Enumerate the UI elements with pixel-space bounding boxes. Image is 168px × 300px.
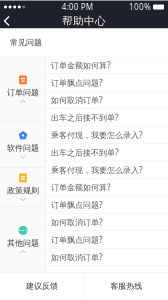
staticText: 订单飘点问题?: [51, 234, 102, 245]
staticText: 常见问题: [10, 38, 42, 47]
staticText: 订单金额如何算?: [51, 182, 110, 193]
button[interactable]: 如何取消订单?: [46, 248, 168, 266]
button[interactable]: 订单飘点问题?: [46, 196, 168, 213]
staticText: 乘客付现，我要怎么录入?: [51, 130, 142, 140]
button[interactable]: 乘客付现，我要怎么录入?: [46, 126, 168, 144]
staticText: 建议反馈: [26, 281, 58, 291]
staticText: 订单飘点问题?: [51, 77, 102, 88]
staticText: 政策规则: [7, 186, 39, 195]
staticText: 软件问题: [7, 143, 39, 153]
button[interactable]: 其他问题: [0, 206, 46, 272]
button[interactable]: 订单飘点问题?: [46, 74, 168, 91]
button[interactable]: 如何取消订单?: [46, 213, 168, 231]
staticText: 其他问题: [7, 238, 39, 248]
staticText: 出车之后接不到单?: [51, 147, 118, 158]
button[interactable]: 订单飘点问题?: [46, 231, 168, 248]
button[interactable]: 乘客付现，我要怎么录入?: [46, 161, 168, 179]
staticText: 帮助中心: [62, 14, 106, 27]
staticText: 如何取消订单?: [51, 217, 102, 228]
button[interactable]: 政策规则: [0, 167, 46, 206]
staticText: 订单飘点问题?: [51, 199, 102, 210]
button[interactable]: 客服热线: [84, 272, 168, 299]
staticText: 4:00 PM: [62, 2, 93, 12]
button[interactable]: 出车之后接不到单?: [46, 144, 168, 161]
staticText: 订单金额如何算?: [51, 60, 110, 70]
button[interactable]: 返回: [0, 13, 14, 28]
button[interactable]: 订单金额如何算?: [46, 56, 168, 74]
button[interactable]: 建议反馈: [0, 272, 84, 299]
staticText: 如何取消订单?: [51, 252, 102, 262]
staticText: 100%: [129, 2, 151, 12]
staticText: 乘客付现，我要怎么录入?: [51, 165, 142, 175]
button[interactable]: 订单问题: [0, 56, 46, 121]
staticText: 出车之后接不到单?: [51, 112, 118, 123]
button[interactable]: 如何取消订单?: [46, 91, 168, 109]
button[interactable]: 软件问题: [0, 121, 46, 167]
button[interactable]: 订单金额如何算?: [46, 179, 168, 196]
button[interactable]: 出车之后接不到单?: [46, 109, 168, 126]
staticText: 如何取消订单?: [51, 95, 102, 105]
staticText: 客服热线: [110, 281, 142, 291]
staticText: 订单问题: [7, 88, 39, 97]
